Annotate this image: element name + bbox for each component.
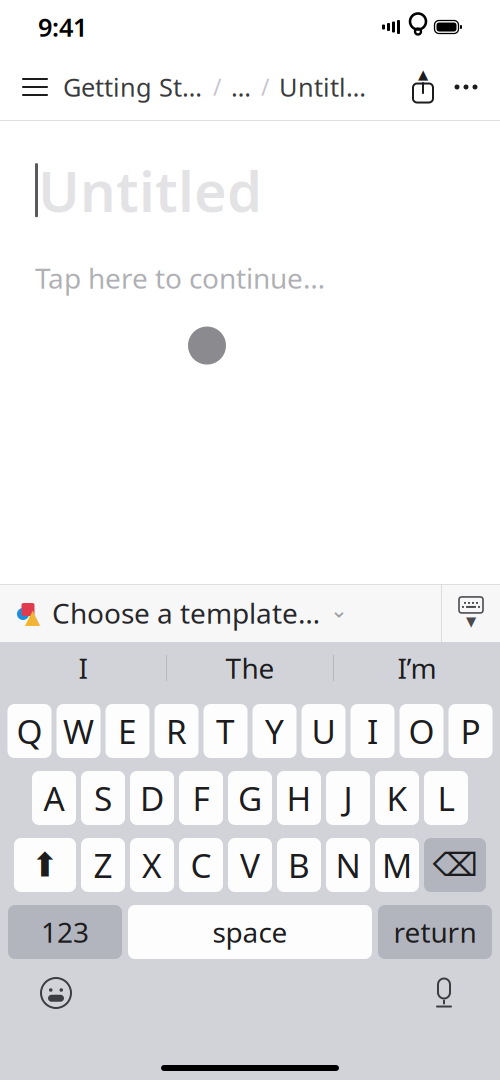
button[interactable]: I’m [334, 642, 500, 694]
staticText: I’m [397, 649, 436, 687]
button[interactable]: B [277, 838, 321, 892]
staticText: E [118, 709, 137, 753]
staticText: O [408, 709, 434, 753]
staticText: A [43, 776, 64, 820]
staticText: Getting St… [63, 70, 202, 104]
button[interactable]: D [130, 771, 174, 825]
staticText: … [231, 70, 251, 104]
staticText: R [166, 709, 187, 753]
button[interactable]: I [0, 642, 166, 694]
staticText: J [343, 776, 352, 820]
button[interactable]: Getting St… [58, 61, 207, 113]
staticText: ▲ [25, 605, 40, 628]
button[interactable]: C [179, 838, 223, 892]
button[interactable]: A [32, 771, 76, 825]
staticText: I [78, 649, 87, 687]
staticText: Untitled [38, 153, 262, 227]
button[interactable]: More options [444, 61, 488, 113]
staticText: space [212, 913, 287, 951]
staticText: N [335, 843, 360, 887]
staticText: 123 [41, 913, 89, 951]
staticText: ▲ [418, 67, 428, 82]
staticText: I [367, 709, 378, 753]
button[interactable]: ▲ [0, 584, 364, 642]
staticText: ▼ [466, 614, 476, 629]
staticText: G [238, 776, 262, 820]
button[interactable]: Z [81, 838, 125, 892]
button[interactable]: P [448, 704, 492, 758]
button[interactable]: N [326, 838, 370, 892]
button[interactable]: R [154, 704, 198, 758]
staticText: ⌄ [330, 598, 348, 622]
staticText: K [386, 776, 407, 820]
staticText: / [213, 72, 221, 102]
staticText: P [460, 709, 480, 753]
staticText: return [393, 913, 476, 951]
staticText: H [286, 776, 311, 820]
staticText: ⌫ [432, 847, 477, 883]
staticText: Z [93, 843, 112, 887]
button[interactable]: L [424, 771, 468, 825]
staticText: D [140, 776, 164, 820]
button[interactable]: W [56, 704, 100, 758]
button[interactable]: K [375, 771, 419, 825]
staticText: / [261, 72, 269, 102]
staticText: F [192, 776, 209, 820]
button[interactable]: S [81, 771, 125, 825]
staticText: Choose a template… [52, 594, 320, 632]
staticText: Tap here to continue… [35, 259, 325, 297]
button[interactable]: Delete [424, 838, 486, 892]
button[interactable]: Tap here to continue… [35, 253, 325, 303]
staticText: T [216, 709, 235, 753]
button[interactable]: H [277, 771, 321, 825]
button[interactable]: The [167, 642, 333, 694]
button[interactable]: V [228, 838, 272, 892]
staticText: S [94, 776, 112, 820]
button[interactable]: O [399, 704, 443, 758]
staticText: M [382, 843, 412, 887]
staticText: Q [16, 709, 42, 753]
button[interactable]: Q [7, 704, 51, 758]
button[interactable]: E [105, 704, 149, 758]
button[interactable]: M [375, 838, 419, 892]
button[interactable]: space [128, 905, 372, 959]
staticText: U [311, 709, 335, 753]
button[interactable]: U [301, 704, 345, 758]
staticText: 9:41 [38, 10, 87, 44]
staticText: B [288, 843, 310, 887]
staticText: V [240, 843, 260, 887]
staticText: W [63, 709, 94, 753]
button[interactable]: 123 [8, 905, 122, 959]
button[interactable]: T [203, 704, 247, 758]
staticText: Untitl… [279, 70, 366, 104]
staticText: Y [265, 709, 284, 753]
button[interactable]: I [350, 704, 394, 758]
button[interactable]: Hide keyboard [442, 584, 500, 642]
staticText: C [190, 843, 211, 887]
button[interactable]: Share [402, 61, 444, 113]
button[interactable]: Menu [12, 61, 58, 113]
staticText: X [142, 843, 162, 887]
button[interactable]: F [179, 771, 223, 825]
button[interactable]: J [326, 771, 370, 825]
button[interactable]: X [130, 838, 174, 892]
button[interactable]: Shift [14, 838, 76, 892]
button[interactable]: return [378, 905, 492, 959]
staticText: ⬆ [31, 846, 59, 884]
staticText: L [437, 776, 454, 820]
button[interactable]: … [227, 61, 255, 113]
button[interactable]: Dictate [414, 969, 474, 1017]
button[interactable]: G [228, 771, 272, 825]
button[interactable]: Emoji [26, 969, 86, 1017]
button[interactable]: Y [252, 704, 296, 758]
staticText: The [225, 649, 274, 687]
button[interactable]: Untitl… [275, 61, 370, 113]
